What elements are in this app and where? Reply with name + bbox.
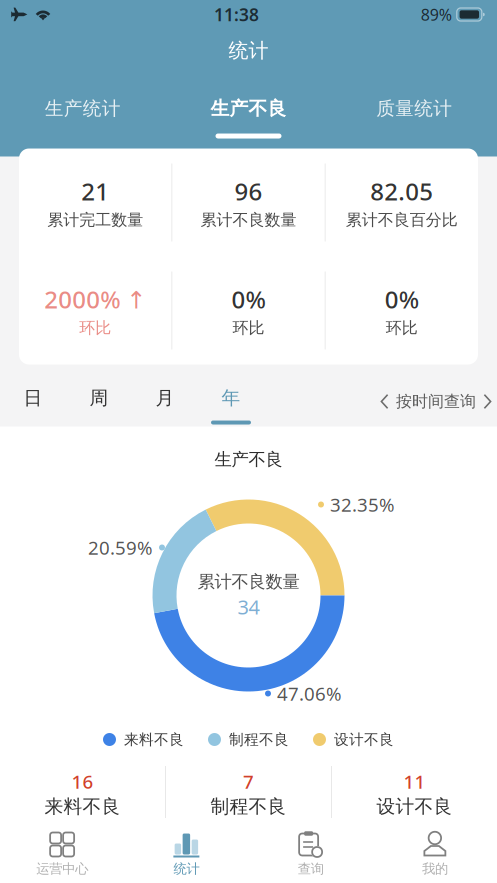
staticText: 环比 — [386, 318, 418, 338]
staticText: 设计不良 — [376, 795, 452, 818]
staticText: 2000% ↑ — [44, 283, 146, 315]
button[interactable]: 统计 — [124, 822, 248, 883]
staticText: 质量统计 — [376, 97, 452, 120]
staticText: 累计不良数量 — [200, 210, 296, 230]
button[interactable]: 质量统计 — [331, 71, 497, 156]
staticText: 统计 — [228, 38, 268, 63]
staticText: 32.35% — [330, 492, 395, 517]
staticText: 运营中心 — [36, 860, 88, 877]
staticText: 设计不良 — [334, 730, 394, 748]
staticText: 查询 — [298, 860, 324, 877]
staticText: 89% — [421, 4, 452, 25]
button[interactable]: 我的 — [373, 822, 497, 883]
staticText: 47.06% — [277, 681, 342, 706]
staticText: 累计不良百分比 — [346, 210, 458, 230]
staticText: 年 — [221, 386, 240, 409]
staticText: 累计不良数量 — [197, 571, 299, 592]
staticText: 生产不良 — [214, 449, 282, 470]
button[interactable]: 查询 — [248, 822, 373, 883]
staticText: 20.59% — [88, 535, 153, 560]
staticText: 生产统计 — [45, 97, 121, 120]
button[interactable]: 日 — [0, 375, 66, 427]
button[interactable]: 年 — [198, 375, 264, 427]
button[interactable]: 生产统计 — [0, 71, 166, 156]
staticText: 周 — [89, 386, 108, 409]
staticText: 来料不良 — [44, 795, 120, 818]
staticText: 我的 — [422, 860, 448, 877]
staticText: 0% — [231, 283, 265, 315]
staticText: 0% — [385, 283, 419, 315]
staticText: 96 — [234, 175, 262, 207]
button[interactable]: 周 — [66, 375, 132, 427]
staticText: 统计 — [173, 860, 199, 877]
button[interactable]: 按时间查询 — [380, 375, 497, 427]
button[interactable]: 运营中心 — [0, 822, 124, 883]
staticText: 月 — [155, 386, 174, 409]
staticText: 按时间查询 — [396, 392, 476, 411]
staticText: 82.05 — [370, 175, 433, 207]
staticText: 制程不良 — [229, 730, 289, 748]
staticText: 11 — [403, 769, 425, 794]
staticText: 累计完工数量 — [47, 210, 143, 230]
staticText: 11:38 — [214, 3, 259, 26]
button[interactable]: 生产不良 — [166, 71, 331, 156]
staticText: 日 — [23, 386, 42, 409]
staticText: 环比 — [79, 318, 111, 338]
staticText: 来料不良 — [124, 730, 184, 748]
staticText: 7 — [243, 769, 254, 794]
staticText: 34 — [237, 593, 259, 620]
staticText: 环比 — [232, 318, 264, 338]
staticText: 16 — [71, 769, 93, 794]
staticText: 生产不良 — [210, 97, 286, 120]
staticText: 21 — [81, 175, 109, 207]
staticText: 制程不良 — [210, 795, 286, 818]
button[interactable]: 月 — [132, 375, 198, 427]
